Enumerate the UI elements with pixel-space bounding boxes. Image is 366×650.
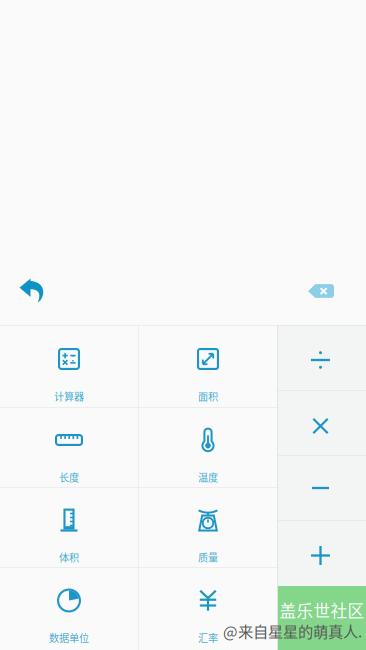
button[interactable]: 体积 bbox=[0, 488, 138, 567]
staticText: 数据单位 bbox=[49, 630, 89, 645]
staticText: 计算器 bbox=[54, 389, 84, 403]
button[interactable]: 质量 bbox=[139, 488, 277, 567]
staticText: 面积 bbox=[198, 389, 218, 403]
staticText: 盖乐世社区 bbox=[279, 598, 364, 622]
staticText: 汇率 bbox=[198, 630, 218, 645]
button[interactable]: Undo bbox=[19, 269, 45, 313]
button[interactable]: Divide bbox=[278, 326, 366, 390]
staticText: 长度 bbox=[59, 470, 79, 484]
staticText: 体积 bbox=[59, 550, 79, 564]
button[interactable]: 数据单位 bbox=[0, 568, 138, 650]
button[interactable]: Add bbox=[278, 521, 366, 586]
staticText: 温度 bbox=[198, 470, 218, 484]
staticText: @来自星星的萌真人. bbox=[223, 620, 362, 642]
staticText: 质量 bbox=[198, 550, 218, 564]
button[interactable]: 温度 bbox=[139, 408, 277, 487]
button[interactable]: 汇率 bbox=[139, 568, 277, 650]
button[interactable]: 计算器 bbox=[0, 326, 138, 407]
button[interactable]: 长度 bbox=[0, 408, 138, 487]
button[interactable]: Multiply bbox=[278, 391, 366, 455]
button[interactable]: 面积 bbox=[139, 326, 277, 407]
button[interactable]: Subtract bbox=[278, 456, 366, 520]
button[interactable]: Delete bbox=[307, 269, 335, 313]
